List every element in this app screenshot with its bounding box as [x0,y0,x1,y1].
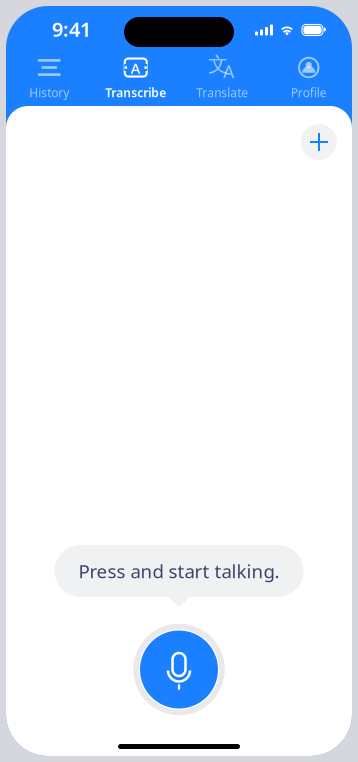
button[interactable]: 文 [179,54,265,100]
staticText: A [131,58,141,78]
staticText: 文 [208,52,228,77]
button[interactable]: History [6,54,92,100]
staticText: History [29,84,69,100]
button[interactable]: Start recording [133,624,224,715]
staticText: Translate [196,84,248,100]
button[interactable]: A [92,54,179,100]
button[interactable]: Profile [265,54,352,100]
staticText: A [223,60,234,83]
button[interactable]: New transcription [297,120,341,164]
staticText: Press and start talking. [78,559,279,583]
staticText: 9:41 [52,16,91,42]
staticText: Profile [291,84,327,100]
staticText: Transcribe [105,84,166,100]
